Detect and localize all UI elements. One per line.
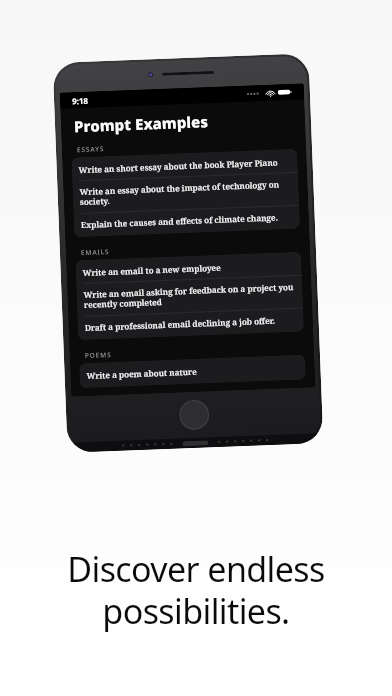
staticText: ESSAYS [77, 144, 105, 154]
staticText: 9:18 [72, 95, 88, 106]
staticText: Write an email asking for feedback on a … [83, 281, 296, 311]
button[interactable]: Write a poem about nature [79, 357, 306, 386]
staticText: Explain the causes and effects of climat… [81, 211, 279, 230]
staticText: Discover endless possibilities. [67, 546, 325, 634]
button[interactable]: Write an short essay about the book Play… [71, 151, 298, 180]
staticText: Write an email to a new employee [82, 262, 222, 278]
staticText: EMAILS [81, 247, 110, 257]
staticText: Write an short essay about the book Play… [78, 156, 278, 175]
button[interactable]: Explain the causes and effects of climat… [73, 206, 300, 235]
button[interactable]: Write an email to a new employee [75, 254, 302, 283]
button[interactable]: Write an essay about the impact of techn… [72, 173, 299, 213]
button[interactable]: Draft a professional email declining a j… [77, 309, 304, 338]
button[interactable]: Home [179, 399, 210, 430]
button[interactable]: Write an email asking for feedback on a … [76, 276, 303, 316]
staticText: Draft a professional email declining a j… [85, 315, 276, 333]
staticText: Prompt Examples [74, 111, 209, 136]
staticText: POEMS [85, 350, 112, 360]
staticText: Write a poem about nature [86, 366, 198, 381]
staticText: Write an essay about the impact of techn… [79, 178, 292, 208]
